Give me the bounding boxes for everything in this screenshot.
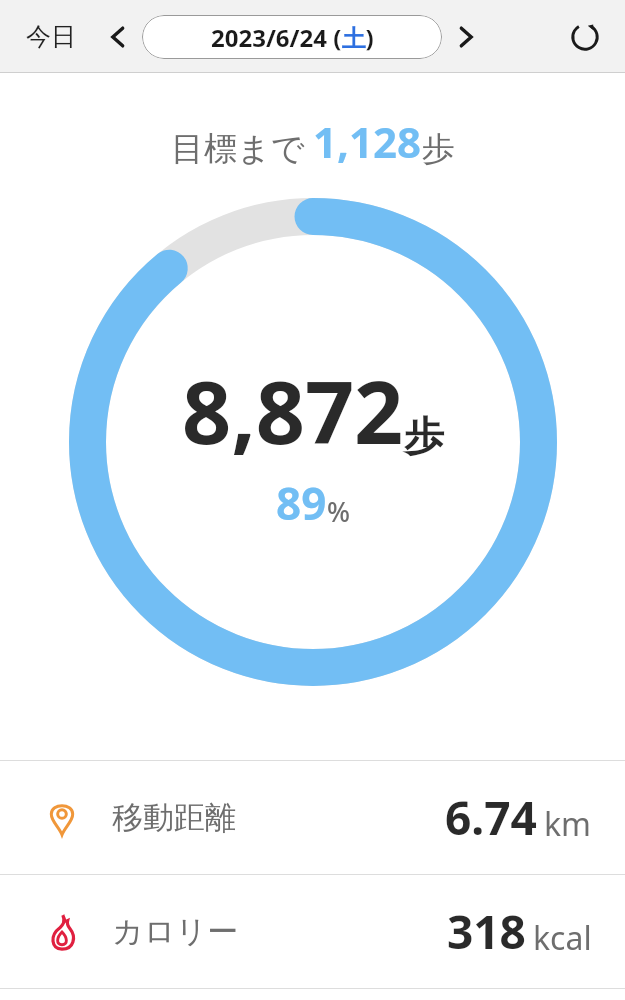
staticText: カロリー (112, 912, 239, 951)
button[interactable]: 今日 (16, 15, 86, 58)
button[interactable]: Next day (444, 15, 488, 59)
button[interactable]: 2023/6/24 (土) (142, 15, 442, 59)
staticText: 8,872 (182, 352, 404, 469)
staticText: % (327, 493, 351, 530)
button[interactable]: Calories (0, 875, 625, 988)
staticText: 318 (447, 900, 526, 963)
staticText: 89 (276, 473, 327, 533)
staticText: kcal (533, 916, 592, 960)
staticText: 目標まで (171, 128, 305, 170)
button[interactable]: Distance (0, 761, 625, 874)
other: Distance (40, 796, 84, 840)
button[interactable]: Previous day (96, 15, 140, 59)
staticText: 2023/6/24 (土) (211, 21, 374, 54)
staticText: 歩 (404, 411, 444, 461)
other: Calories (40, 910, 84, 954)
button[interactable]: Refresh (561, 13, 609, 61)
staticText: 歩 (422, 128, 455, 170)
staticText: 1,128 (313, 113, 422, 170)
staticText: 今日 (26, 21, 76, 52)
staticText: 6.74 (445, 786, 537, 849)
staticText: 移動距離 (112, 798, 236, 837)
staticText: km (544, 802, 592, 846)
